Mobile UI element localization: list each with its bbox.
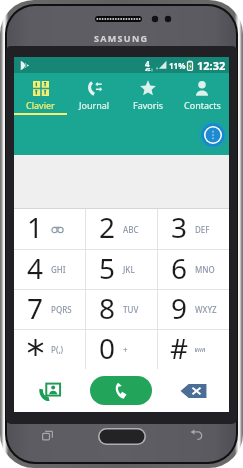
button[interactable]: 8 [85, 290, 157, 329]
button[interactable]: # [157, 330, 229, 369]
staticText: PQRS [51, 304, 72, 315]
button[interactable]: 0 [85, 330, 157, 369]
staticText: DEF [195, 224, 210, 235]
button[interactable]: 2 [85, 209, 157, 249]
other: Recents [42, 430, 53, 441]
button[interactable]: Journal [67, 73, 121, 115]
staticText: 2 [99, 208, 116, 246]
staticText: 9 [171, 289, 188, 327]
staticText: Journal [79, 99, 110, 111]
staticText: 5 [99, 249, 116, 287]
other: Back [190, 428, 203, 441]
button[interactable]: Call [90, 376, 152, 405]
staticText: 8 [99, 289, 116, 327]
staticText: ABC [123, 224, 139, 235]
staticText: JKL [123, 264, 135, 275]
button[interactable]: More options [198, 120, 228, 150]
staticText: WXYZ [195, 304, 217, 315]
button[interactable]: Add to contacts [14, 369, 85, 412]
staticText: 0 [99, 329, 116, 367]
staticText: Clavier [26, 99, 55, 111]
staticText: 11% [169, 60, 186, 71]
button[interactable]: Delete [157, 369, 229, 412]
staticText: 1 [27, 208, 44, 246]
staticText: 3 [171, 208, 188, 246]
other: Home [98, 428, 146, 445]
staticText: MNO [195, 264, 215, 275]
button[interactable]: Favoris [121, 73, 175, 115]
staticText: Favoris [133, 99, 164, 111]
staticText: 4 [27, 249, 44, 287]
button[interactable]: Contacts [175, 73, 229, 115]
staticText: GHI [51, 264, 66, 275]
staticText: + [123, 344, 128, 355]
button[interactable]: 7 [14, 290, 85, 329]
staticText: P(,) [51, 344, 64, 355]
button[interactable]: 3 [157, 209, 229, 249]
button[interactable]: 1 [14, 209, 85, 249]
staticText: 7 [27, 289, 44, 327]
button[interactable]: 6 [157, 250, 229, 289]
button[interactable]: 9 [157, 290, 229, 329]
staticText: 12:32 [197, 58, 226, 73]
staticText: 6 [171, 249, 188, 287]
staticText: SAMSUNG [94, 32, 149, 44]
button[interactable]: 5 [85, 250, 157, 289]
staticText: # [170, 329, 189, 367]
button[interactable]: P(,) [14, 330, 85, 369]
staticText: TUV [123, 304, 139, 315]
button[interactable]: 4 [14, 250, 85, 289]
staticText: 4G [145, 58, 155, 71]
button[interactable]: Clavier [14, 73, 67, 115]
staticText: Contacts [184, 99, 221, 111]
